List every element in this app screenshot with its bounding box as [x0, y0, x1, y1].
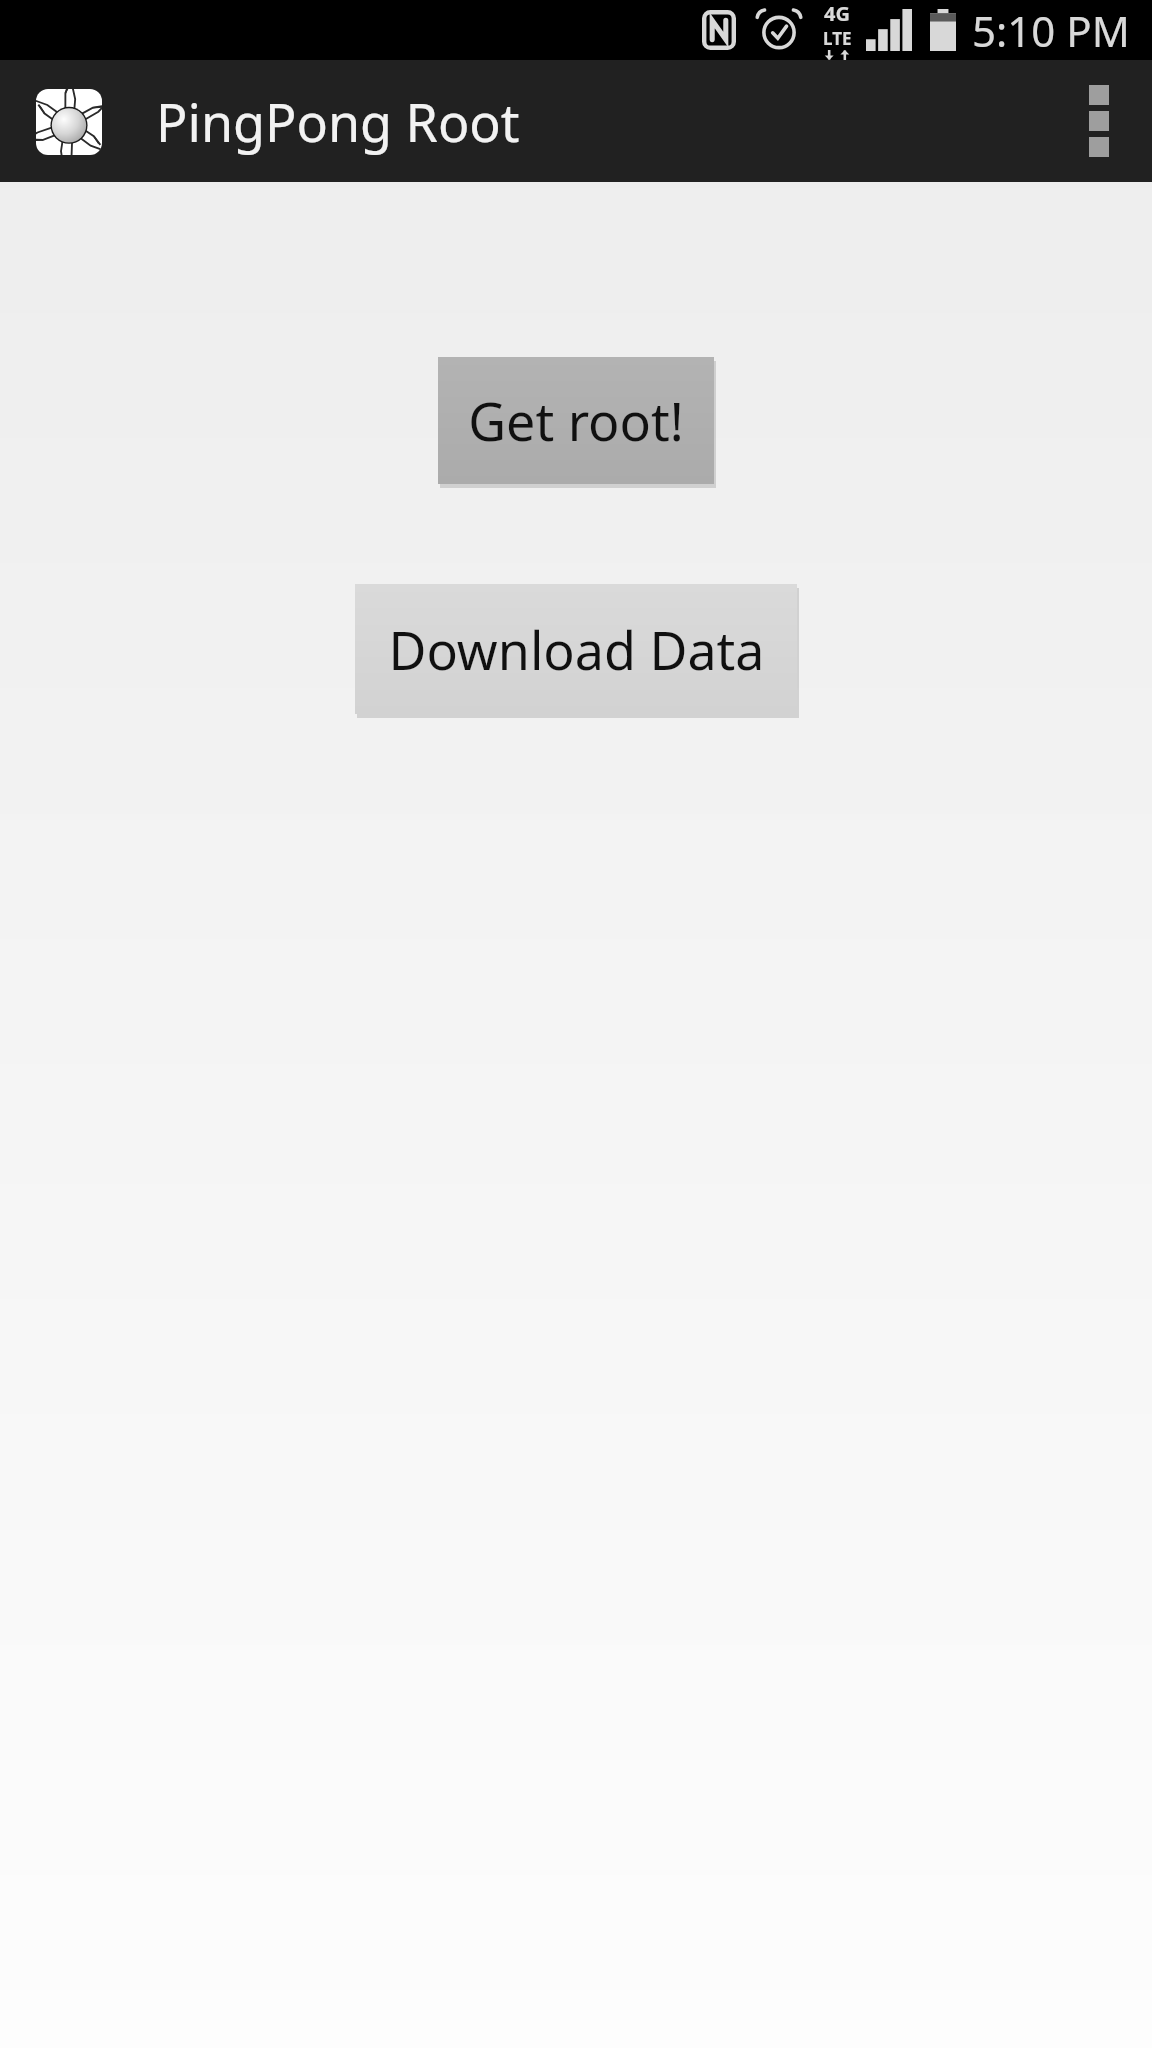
staticText: 4G [824, 0, 850, 27]
button[interactable]: Download Data [355, 584, 797, 714]
staticText: Download Data [388, 614, 765, 685]
staticText: LTE [823, 27, 852, 50]
staticText: PingPong Root [156, 86, 520, 157]
staticText: 5:10 PM [972, 2, 1130, 59]
button[interactable]: Get root! [438, 357, 714, 484]
staticText: Get root! [468, 385, 684, 456]
button[interactable]: More options [1046, 60, 1152, 182]
